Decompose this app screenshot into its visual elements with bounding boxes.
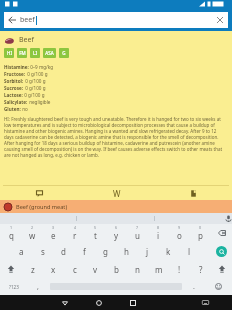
staticText: LI (33, 50, 37, 56)
staticText: 0 (199, 225, 202, 230)
button[interactable]: l (179, 242, 200, 260)
button[interactable]: Notes (155, 186, 232, 200)
staticText: Fructose: (4, 71, 26, 77)
staticText: p (198, 230, 203, 241)
button[interactable]: Comments (0, 186, 78, 200)
button[interactable]: LI (30, 48, 40, 58)
staticText: Histamine: (4, 64, 29, 70)
staticText: o (177, 230, 182, 241)
staticText: u (135, 230, 140, 241)
staticText: 9 (178, 225, 181, 230)
button[interactable]: d (53, 242, 74, 260)
staticText: Salicylate: (4, 99, 28, 105)
staticText: 0–9 mg/kg (29, 64, 54, 70)
staticText: g (103, 246, 108, 257)
button[interactable]: ! (169, 260, 190, 278)
button[interactable]: Recents (116, 295, 150, 310)
button[interactable]: Backspace (211, 224, 232, 242)
staticText: e (51, 230, 56, 241)
button[interactable]: Voice input (155, 213, 232, 224)
button[interactable]: HI (4, 48, 14, 58)
button[interactable]: , (28, 278, 48, 295)
button[interactable]: a (11, 242, 32, 260)
button[interactable]: Beef (ground meat) (4, 200, 232, 213)
button[interactable]: Navigate up (4, 12, 20, 28)
button[interactable]: 3 (43, 224, 64, 242)
button[interactable]: Wikipedia (78, 186, 155, 200)
button[interactable]: 0 (190, 224, 211, 242)
staticText: m (155, 264, 163, 275)
staticText: i (157, 230, 160, 241)
button[interactable]: 2 (22, 224, 43, 242)
staticText: l (188, 246, 191, 257)
staticText: 4 (74, 225, 77, 230)
button[interactable]: k (158, 242, 179, 260)
staticText: Gluten: (4, 106, 21, 112)
staticText: j (146, 246, 149, 257)
button[interactable]: G (59, 48, 69, 58)
staticText: HI: Freshly slaughtered beef is very tou… (4, 116, 227, 158)
button[interactable]: h (116, 242, 137, 260)
button[interactable]: Shift right (211, 260, 232, 278)
staticText: h (124, 246, 129, 257)
staticText: Beef (19, 35, 34, 45)
staticText: Sorbitol: (4, 78, 24, 84)
staticText: G (62, 50, 66, 56)
staticText: f (83, 246, 86, 257)
staticText: Beef (ground meat) (16, 203, 68, 211)
staticText: k (166, 246, 171, 257)
staticText: 3 (52, 225, 55, 230)
button[interactable]: s (32, 242, 53, 260)
staticText: 8 (157, 225, 160, 230)
staticText: 0 g/100 g (26, 71, 48, 77)
staticText: s (41, 246, 45, 257)
button[interactable]: v (85, 260, 106, 278)
staticText: t (94, 230, 97, 241)
staticText: ?123 (9, 284, 19, 290)
button[interactable]: 8 (148, 224, 169, 242)
staticText: 7 (136, 225, 139, 230)
button[interactable]: c (64, 260, 85, 278)
button[interactable]: 9 (169, 224, 190, 242)
button[interactable]: ?123 (0, 278, 28, 295)
staticText: FM (19, 50, 26, 56)
staticText: a (19, 246, 24, 257)
button[interactable]: 4 (64, 224, 85, 242)
button[interactable]: 5 (85, 224, 106, 242)
button[interactable]: Beef (4, 34, 232, 46)
button[interactable]: Search (211, 242, 232, 260)
button[interactable]: FM (17, 48, 27, 58)
button[interactable]: b (106, 260, 127, 278)
button[interactable]: g (95, 242, 116, 260)
button[interactable]: Home (82, 295, 116, 310)
button[interactable]: . (184, 278, 204, 295)
button[interactable]: Navigate up (4, 12, 228, 28)
button[interactable]: Emoji (204, 278, 232, 295)
button[interactable]: z (22, 260, 43, 278)
button[interactable]: m (148, 260, 169, 278)
button[interactable]: 7 (127, 224, 148, 242)
button[interactable]: j (137, 242, 158, 260)
button[interactable]: Switch keyboard (188, 295, 222, 310)
staticText: ASA (45, 50, 54, 56)
staticText: q (9, 230, 14, 241)
button[interactable]: 6 (106, 224, 127, 242)
button[interactable]: f (74, 242, 95, 260)
button[interactable]: ASA (43, 48, 56, 58)
button[interactable]: 1 (0, 224, 22, 242)
staticText: w (29, 230, 36, 241)
button[interactable]: Back (48, 295, 82, 310)
staticText: 2 (31, 225, 34, 230)
button[interactable]: Shift (0, 260, 22, 278)
button[interactable]: Clear query (212, 12, 228, 28)
staticText: n (135, 264, 140, 275)
staticText: HI (7, 50, 12, 56)
button[interactable]: ? (190, 260, 211, 278)
staticText: 0 g/100 g (24, 85, 46, 91)
button[interactable]: n (127, 260, 148, 278)
staticText: r (73, 230, 77, 241)
button[interactable]: x (43, 260, 64, 278)
